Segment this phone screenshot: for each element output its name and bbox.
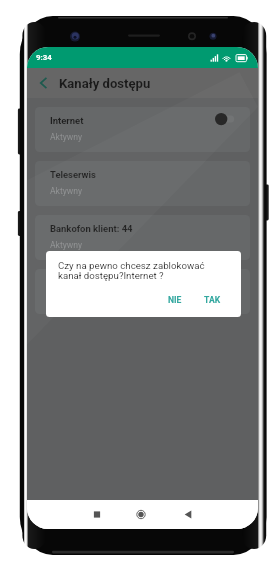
- staticText: Aktywny: [50, 240, 83, 250]
- staticText: Aktywny: [50, 186, 83, 196]
- button[interactable]: Toggle Internet: [215, 112, 239, 126]
- staticText: Bankofon klient: 44: [50, 223, 133, 234]
- staticText: NIE: [168, 295, 182, 305]
- button[interactable]: Recent apps: [85, 500, 109, 529]
- button[interactable]: Internet: [35, 107, 250, 152]
- staticText: Czy na pewno chcesz zablokować kanał dos…: [58, 260, 205, 282]
- staticText: Teleserwis: [50, 169, 96, 180]
- button[interactable]: [35, 269, 250, 314]
- staticText: TAK: [204, 295, 221, 305]
- staticText: Internet: [50, 115, 84, 126]
- staticText: 9:34: [36, 53, 52, 62]
- button[interactable]: Back: [27, 68, 59, 98]
- button[interactable]: Home: [129, 500, 153, 529]
- button[interactable]: NIE: [164, 290, 186, 310]
- button[interactable]: Bankofon klient: 44: [35, 215, 250, 260]
- staticText: Aktywny: [50, 132, 83, 142]
- button[interactable]: Teleserwis: [35, 161, 250, 206]
- button[interactable]: Back: [176, 500, 200, 529]
- staticText: Kanały dostępu: [59, 76, 151, 91]
- button[interactable]: TAK: [201, 290, 223, 310]
